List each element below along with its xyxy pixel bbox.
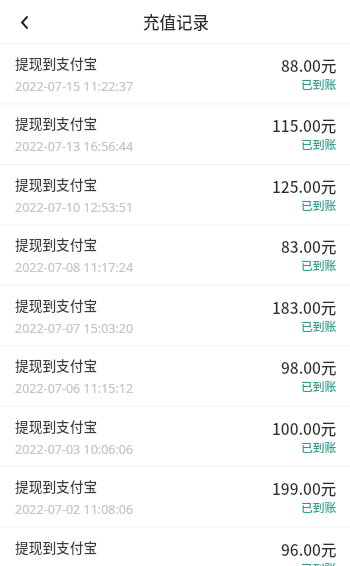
staticText: 提现到支付宝 [15,416,98,436]
staticText: 已到账 [301,75,337,92]
staticText: 已到账 [301,256,337,273]
staticText: 2022-07-06 11:15:12 [15,380,134,397]
staticText: 已到账 [301,559,337,566]
staticText: 125.00元 [272,175,337,197]
staticText: 已到账 [301,438,337,455]
staticText: 已到账 [301,196,337,213]
staticText: 已到账 [301,135,337,152]
staticText: 98.00元 [281,356,337,378]
staticText: 提现到支付宝 [15,476,98,496]
staticText: 提现到支付宝 [15,355,98,375]
staticText: 2022-07-07 15:03:20 [15,320,134,337]
staticText: 提现到支付宝 [15,53,98,73]
staticText: 2022-07-08 11:17:24 [15,259,134,276]
button[interactable]: 提现到支付宝 [0,103,350,163]
staticText: 提现到支付宝 [15,537,98,557]
staticText: 已到账 [301,498,337,515]
button[interactable]: 提现到支付宝 [0,285,350,345]
staticText: 充值记录 [143,10,209,34]
staticText: 100.00元 [272,417,337,439]
button[interactable]: 提现到支付宝 [0,527,350,566]
staticText: 已到账 [301,317,337,334]
button[interactable]: 提现到支付宝 [0,466,350,526]
button[interactable]: 提现到支付宝 [0,43,350,103]
button[interactable]: 提现到支付宝 [0,406,350,466]
staticText: 115.00元 [272,114,337,136]
staticText: 2022-07-10 12:53:51 [15,199,134,216]
button[interactable]: 提现到支付宝 [0,164,350,224]
button[interactable]: 提现到支付宝 [0,345,350,405]
staticText: 199.00元 [272,477,337,499]
button[interactable]: 提现到支付宝 [0,224,350,284]
staticText: 2022-07-03 10:06:06 [15,441,134,458]
staticText: 提现到支付宝 [15,113,98,133]
staticText: 88.00元 [281,54,337,76]
staticText: 2022-07-13 16:56:44 [15,138,134,155]
staticText: 2022-07-15 11:22:37 [15,78,134,95]
staticText: 83.00元 [281,235,337,257]
staticText: 183.00元 [272,296,337,318]
staticText: 96.00元 [281,538,337,560]
staticText: 提现到支付宝 [15,174,98,194]
staticText: 2022-07-02 11:08:06 [15,501,134,518]
staticText: 提现到支付宝 [15,234,98,254]
button[interactable]: Back [7,5,41,39]
staticText: 已到账 [301,377,337,394]
staticText: 提现到支付宝 [15,295,98,315]
